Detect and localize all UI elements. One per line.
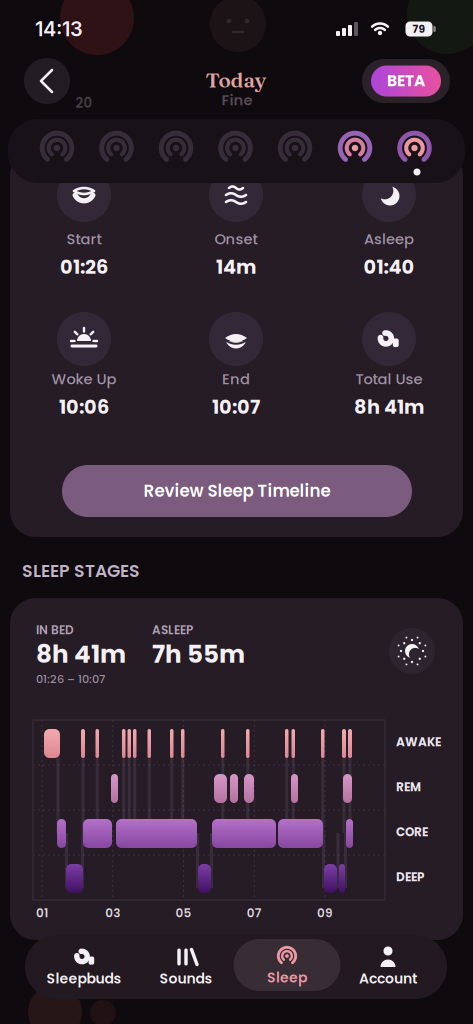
staticText: Woke Up [51,369,116,389]
staticText: 05 [175,905,191,921]
staticText: 10:07 [212,393,260,421]
button[interactable]: Previous sleep session [330,120,380,176]
button[interactable]: Sleepbuds [34,936,134,994]
staticText: 01:40 [363,253,414,281]
staticText: 01:26 [60,253,108,281]
button[interactable]: Current sleep session [389,120,439,176]
staticText: 20 [75,94,92,112]
staticText: 03 [105,905,120,921]
staticText: BETA [387,70,425,92]
button[interactable]: Sleep stages info [389,628,435,674]
staticText: CORE [396,824,428,840]
staticText: IN BED [36,622,74,638]
staticText: Sounds [159,969,212,988]
staticText: 79 [412,21,425,36]
button[interactable]: Past sleep session [210,120,260,176]
button[interactable]: Back [24,58,70,104]
staticText: Onset [214,229,257,249]
staticText: 8h 41m [354,393,424,421]
staticText: End [222,369,250,389]
staticText: AWAKE [396,734,441,750]
button[interactable]: Past sleep session [270,120,320,176]
staticText: Start [66,229,101,249]
staticText: 8h 41m [36,637,126,671]
staticText: 07 [247,905,262,921]
button[interactable]: Review Sleep Timeline [62,465,412,517]
staticText: Asleep [364,229,414,249]
staticText: 10:06 [59,393,109,421]
button[interactable]: Past sleep session [91,120,141,176]
button[interactable]: Account [338,936,438,994]
button[interactable]: Sounds [136,936,236,994]
button[interactable]: Past sleep session [32,120,82,176]
button[interactable]: Sleep [233,939,340,991]
staticText: Sleep [267,968,307,987]
staticText: Total Use [355,369,422,389]
button[interactable]: Past sleep session [151,120,201,176]
staticText: Review Sleep Timeline [143,479,330,503]
staticText: Account [359,969,417,988]
staticText: DEEP [396,869,424,885]
staticText: 14:13 [35,17,83,41]
staticText: Fine [221,90,252,110]
staticText: 14m [216,253,256,281]
staticText: Sleepbuds [46,969,121,988]
staticText: 01:26 – 10:07 [36,671,105,687]
staticText: REM [396,779,421,795]
staticText: 7h 55m [152,637,245,671]
staticText: ASLEEP [152,622,193,638]
staticText: Today [205,67,266,93]
staticText: 09 [317,905,333,921]
staticText: SLEEP STAGES [22,559,140,583]
staticText: 01 [36,905,48,921]
